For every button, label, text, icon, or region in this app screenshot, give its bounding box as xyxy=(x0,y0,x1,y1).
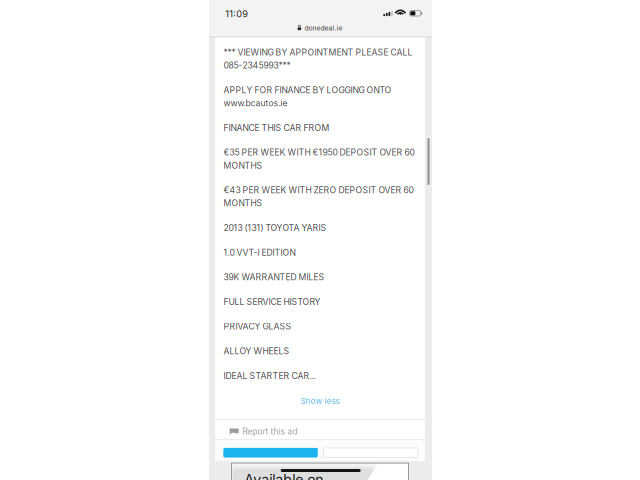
staticText: www.bcautos.ie xyxy=(224,98,288,108)
staticText: PRIVACY GLASS xyxy=(224,321,292,332)
staticText: 11:09 xyxy=(225,8,248,19)
staticText: IDEAL STARTER CAR... xyxy=(224,371,316,381)
staticText: 39K WARRANTED MILES xyxy=(224,272,325,282)
button[interactable]: Show less xyxy=(215,394,425,408)
staticText: €35 PER WEEK WITH €1950 DEPOSIT OVER 60 xyxy=(224,147,415,158)
staticText: donedeal.ie xyxy=(304,24,342,32)
staticText: FINANCE THIS CAR FROM xyxy=(224,123,330,133)
staticText: 085-2345993*** xyxy=(224,60,291,71)
staticText: MONTHS xyxy=(224,160,263,171)
button[interactable]: Report this ad xyxy=(230,424,298,438)
staticText: *** VIEWING BY APPOINTMENT PLEASE CALL xyxy=(224,47,413,58)
staticText: Show less xyxy=(300,396,339,406)
staticText: Report this ad xyxy=(242,426,297,437)
button[interactable]: Email seller xyxy=(323,448,418,457)
button[interactable]: donedeal.ie xyxy=(290,22,350,33)
staticText: 1.0 VVT-I EDITION xyxy=(224,247,296,258)
staticText: Available on xyxy=(244,471,323,480)
staticText: MONTHS xyxy=(224,198,263,208)
staticText: 2013 (131) TOYOTA YARIS xyxy=(224,223,327,233)
staticText: ALLOY WHEELS xyxy=(224,346,290,356)
staticText: APPLY FOR FINANCE BY LOGGING ONTO xyxy=(224,85,392,95)
button[interactable]: Call seller xyxy=(223,448,318,457)
staticText: €43 PER WEEK WITH ZERO DEPOSIT OVER 60 xyxy=(224,185,414,195)
staticText: FULL SERVICE HISTORY xyxy=(224,297,321,307)
